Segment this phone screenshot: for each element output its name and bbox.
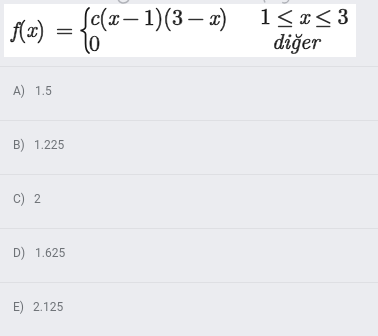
staticText: f(x) = (11, 12, 74, 43)
button[interactable]: C) (0, 175, 378, 228)
staticText: E) (13, 300, 24, 314)
staticText: c(x − 1)(3 − x) (89, 0, 228, 31)
button[interactable]: A) (0, 67, 378, 120)
staticText: A) (13, 84, 26, 98)
staticText: diğer (272, 24, 320, 55)
staticText: diğer (272, 24, 320, 55)
staticText: 2.125 (33, 300, 64, 314)
staticText: 1 ≤ x ≤ 3 (260, 0, 349, 30)
staticText: 1 ≤ x ≤ 3 (260, 0, 349, 30)
button[interactable]: D) (0, 229, 378, 282)
staticText: 1.5 (35, 84, 52, 98)
button[interactable]: E) (0, 283, 378, 336)
staticText: 1.225 (34, 138, 65, 152)
staticText: 0 (89, 26, 101, 57)
staticText: C) (13, 192, 25, 206)
staticText: 2 (34, 192, 41, 206)
staticText: c(x − 1)(3 − x) (89, 0, 228, 31)
staticText: f(x) = (11, 12, 74, 43)
staticText: 0 (89, 26, 101, 57)
staticText: B) (13, 138, 25, 152)
button[interactable]: B) (0, 121, 378, 174)
staticText: 1.625 (35, 246, 66, 260)
staticText: D) (13, 246, 26, 260)
